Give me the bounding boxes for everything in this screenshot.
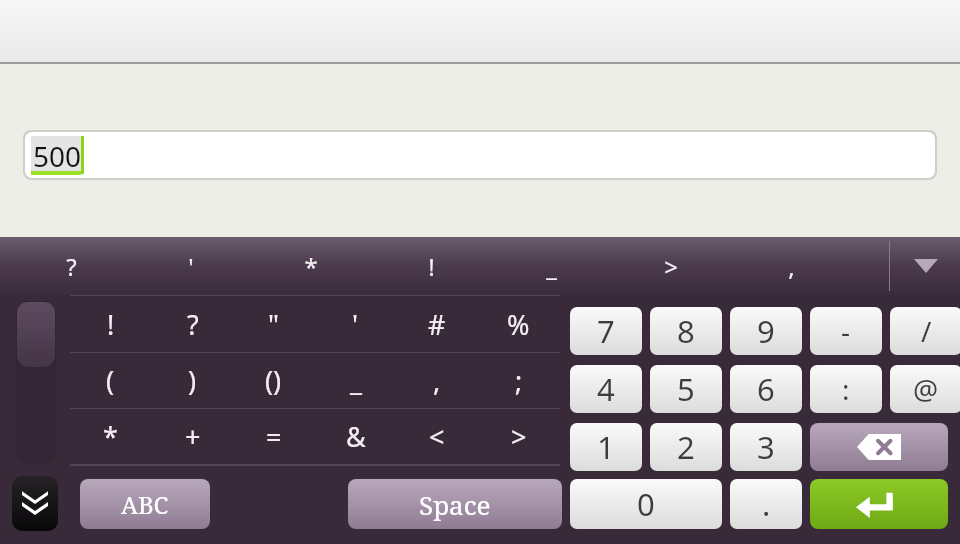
staticText: 7: [597, 310, 615, 352]
staticText: @: [913, 370, 939, 408]
staticText: 5: [677, 368, 695, 410]
button[interactable]: ,: [736, 237, 846, 295]
button[interactable]: More suggestions: [896, 237, 956, 295]
staticText: ,: [788, 250, 795, 283]
button[interactable]: Enter: [810, 479, 948, 529]
button[interactable]: >: [478, 409, 559, 464]
button[interactable]: ?: [152, 297, 233, 352]
staticText: :: [842, 370, 850, 408]
button[interactable]: Space: [348, 479, 562, 529]
staticText: ": [268, 306, 280, 343]
staticText: 6: [757, 368, 775, 410]
button[interactable]: !: [70, 297, 151, 352]
staticText: >: [664, 250, 678, 283]
staticText: %: [507, 306, 530, 343]
button[interactable]: 3: [730, 423, 802, 471]
staticText: *: [304, 250, 318, 283]
staticText: ,: [433, 362, 441, 399]
button[interactable]: 0: [570, 479, 722, 529]
staticText: ': [188, 250, 194, 283]
staticText: 0: [637, 483, 655, 525]
staticText: ;: [515, 362, 523, 399]
button[interactable]: /: [890, 307, 960, 355]
button[interactable]: :: [810, 365, 882, 413]
staticText: 9: [757, 310, 775, 352]
staticText: *: [103, 418, 118, 455]
button[interactable]: >: [616, 237, 726, 295]
button[interactable]: [16, 301, 56, 464]
button[interactable]: 500: [23, 130, 937, 180]
staticText: +: [185, 418, 201, 455]
button[interactable]: <: [396, 409, 477, 464]
staticText: _: [350, 362, 362, 399]
button[interactable]: ;: [478, 353, 559, 408]
staticText: &: [346, 418, 366, 455]
staticText: !: [428, 250, 435, 283]
button[interactable]: _: [496, 237, 606, 295]
staticText: (: [106, 362, 115, 399]
button[interactable]: ": [233, 297, 314, 352]
button[interactable]: 9: [730, 307, 802, 355]
button[interactable]: .: [730, 479, 802, 529]
button[interactable]: 8: [650, 307, 722, 355]
staticText: 8: [677, 310, 695, 352]
staticText: (): [265, 362, 282, 399]
staticText: 4: [597, 368, 615, 410]
staticText: 2: [677, 426, 695, 468]
button[interactable]: #: [396, 297, 477, 352]
staticText: /: [921, 312, 932, 350]
button[interactable]: 4: [570, 365, 642, 413]
button[interactable]: 6: [730, 365, 802, 413]
staticText: _: [546, 250, 557, 283]
button[interactable]: ): [152, 353, 233, 408]
button[interactable]: ': [315, 297, 396, 352]
staticText: #: [428, 306, 446, 343]
button[interactable]: ABC: [80, 479, 210, 529]
button[interactable]: ,: [396, 353, 477, 408]
staticText: Space: [419, 487, 491, 522]
staticText: ?: [66, 250, 77, 283]
staticText: -: [841, 312, 851, 350]
staticText: 500: [33, 137, 82, 175]
button[interactable]: ': [136, 237, 246, 295]
button[interactable]: +: [152, 409, 233, 464]
staticText: 3: [757, 426, 775, 468]
button[interactable]: 1: [570, 423, 642, 471]
button[interactable]: 5: [650, 365, 722, 413]
button[interactable]: Hide keyboard: [12, 476, 58, 531]
button[interactable]: %: [478, 297, 559, 352]
button[interactable]: !: [376, 237, 486, 295]
button[interactable]: *: [256, 237, 366, 295]
button[interactable]: (: [70, 353, 151, 408]
staticText: .: [762, 483, 771, 525]
staticText: ': [352, 306, 359, 343]
staticText: ): [188, 362, 197, 399]
button[interactable]: &: [315, 409, 396, 464]
button[interactable]: (): [233, 353, 314, 408]
staticText: ?: [187, 306, 199, 343]
button[interactable]: _: [315, 353, 396, 408]
staticText: =: [266, 418, 282, 455]
button[interactable]: Backspace: [810, 423, 948, 471]
staticText: !: [107, 306, 115, 343]
staticText: 1: [597, 426, 615, 468]
button[interactable]: =: [233, 409, 314, 464]
staticText: >: [511, 418, 527, 455]
button[interactable]: *: [70, 409, 151, 464]
staticText: <: [429, 418, 445, 455]
button[interactable]: @: [890, 365, 960, 413]
button[interactable]: -: [810, 307, 882, 355]
button[interactable]: 7: [570, 307, 642, 355]
staticText: ABC: [121, 488, 169, 521]
button[interactable]: ?: [16, 237, 126, 295]
button[interactable]: 2: [650, 423, 722, 471]
